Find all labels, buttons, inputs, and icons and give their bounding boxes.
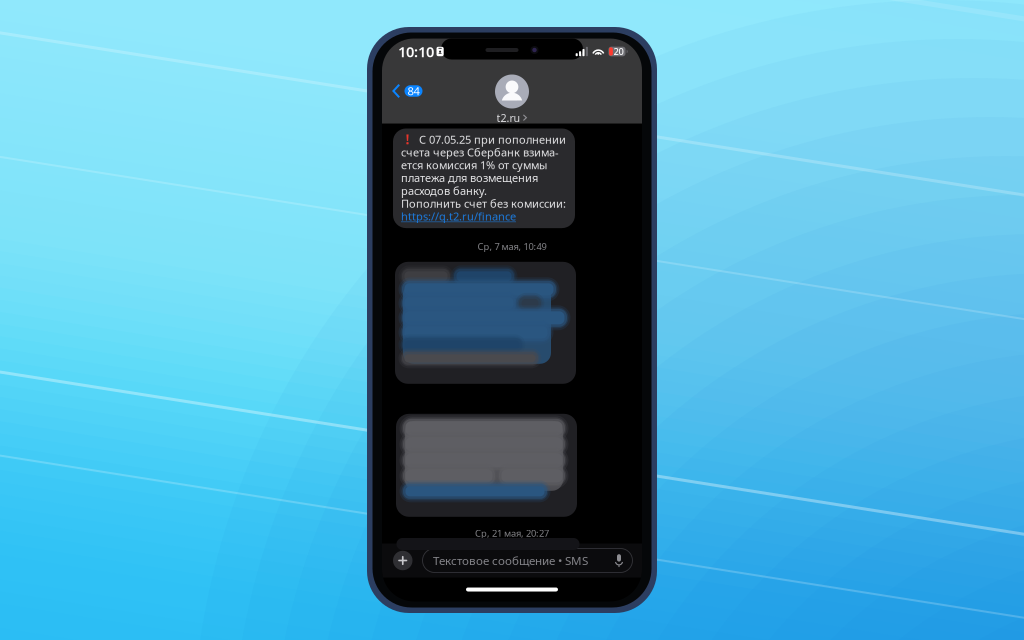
staticText: Ср, 7 мая, 10:49 [477,240,546,253]
staticText: 20 [614,45,624,58]
staticText: Текстовое сообщение • SMS [433,553,588,568]
staticText: счета через Сбербанк взима- [401,145,559,160]
staticText: https://q.t2.ru/finance [401,209,516,224]
staticText: расходов банку. [401,183,487,198]
button[interactable]: t2.ru [485,74,539,128]
staticText: ется комиссия 1% от суммы [401,157,547,173]
staticText: С 07.05.25 при пополнении [419,132,566,147]
staticText: Ср, 21 мая, 20:27 [475,527,549,539]
staticText: Пополнить счет без комиссии: [401,196,566,211]
staticText: 10:10 [398,42,434,61]
button[interactable]: Add attachment [393,551,412,570]
staticText: 84 [407,83,419,99]
staticText: платежа для возмещения [401,170,538,185]
staticText: t2.ru [497,110,521,125]
button[interactable]: Текстовое сообщение • SMS [422,548,632,572]
button[interactable]: 84 [382,76,428,105]
